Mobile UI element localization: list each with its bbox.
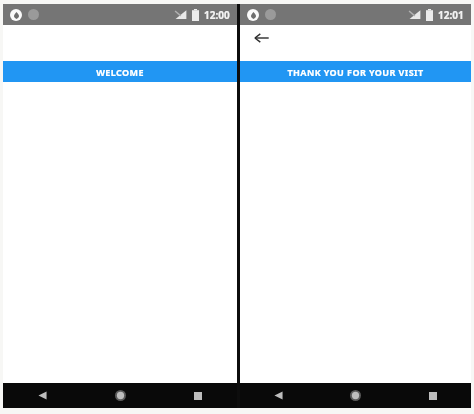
button[interactable]: Back [3,383,81,408]
button[interactable]: Home [317,383,394,408]
button[interactable]: THANK YOU FOR YOUR VISIT [240,61,471,82]
button[interactable]: Navigate up [250,27,272,49]
button[interactable]: Back [240,383,317,408]
staticText: THANK YOU FOR YOUR VISIT [287,66,424,78]
staticText: WELCOME [96,66,144,78]
button[interactable]: Home [81,383,159,408]
button[interactable]: Recent apps [159,383,237,408]
staticText: 12:01 [438,8,464,22]
staticText: 12:00 [204,8,230,22]
button[interactable]: Recent apps [394,383,471,408]
button[interactable]: WELCOME [3,61,237,82]
